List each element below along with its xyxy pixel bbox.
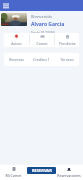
button[interactable]: Reservaciones — [56, 165, 82, 180]
button[interactable]: Creditos 1 — [29, 53, 54, 66]
button[interactable]: Avisos — [4, 33, 29, 47]
button[interactable]: Reservas — [4, 53, 29, 66]
button[interactable]: Pendiente — [55, 33, 79, 47]
staticText: Pendiente — [59, 41, 76, 46]
button[interactable]: Menu — [3, 3, 9, 8]
staticText: Torneos — [60, 57, 74, 62]
button[interactable]: Mi Carnet — [1, 165, 26, 180]
staticText: Creditos 1 — [33, 57, 50, 62]
staticText: Carnet — [36, 41, 48, 46]
staticText: Socio 0123456 — [31, 30, 55, 35]
button[interactable]: Carnet — [30, 33, 54, 47]
staticText: RESERVAR — [32, 168, 52, 173]
button[interactable]: RESERVAR — [27, 167, 56, 174]
staticText: Alvaro Garcia — [31, 21, 65, 28]
button[interactable]: Torneos — [54, 53, 79, 66]
staticText: Mi Carnet — [5, 173, 22, 178]
staticText: Reservaciones — [57, 173, 81, 178]
staticText: Avisos — [11, 41, 22, 46]
staticText: Bienvenido — [31, 14, 53, 19]
staticText: Reservas — [9, 57, 24, 62]
